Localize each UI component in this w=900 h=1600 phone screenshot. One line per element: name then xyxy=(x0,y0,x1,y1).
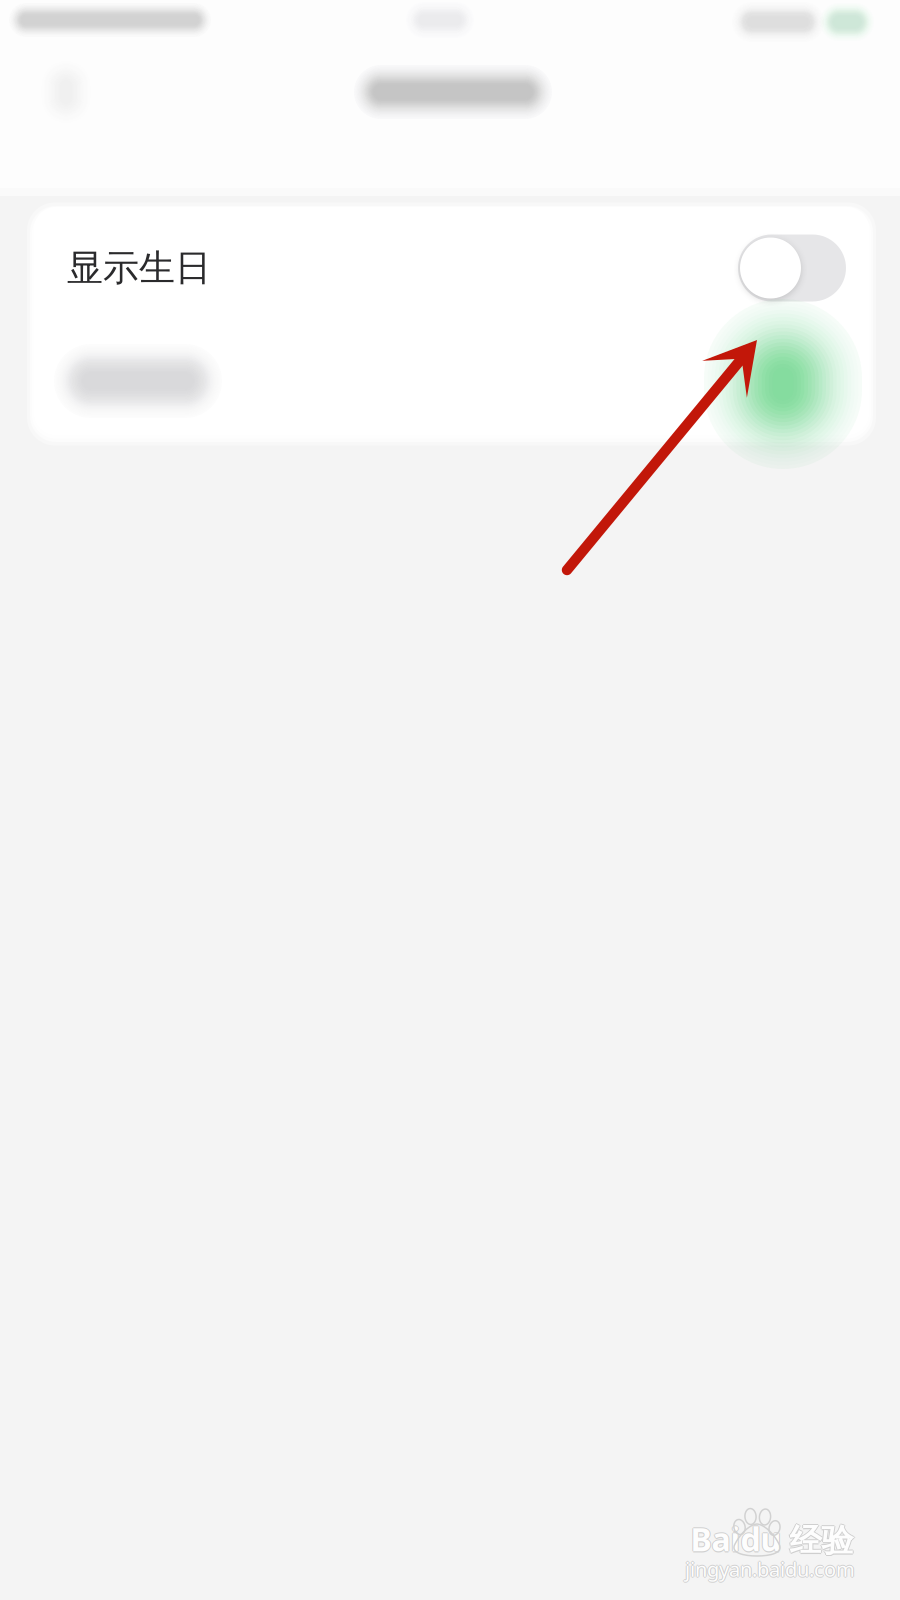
staticText: jingyan.baidu.com xyxy=(685,1557,855,1583)
staticText: jingyan.baidu.com xyxy=(685,1555,855,1581)
staticText: Baidu 经验 xyxy=(692,1518,855,1560)
staticText: Baidu 经验 xyxy=(690,1518,853,1560)
staticText: jingyan.baidu.com xyxy=(685,1556,855,1582)
button[interactable]: 显示生日 xyxy=(34,213,869,323)
staticText: jingyan.baidu.com xyxy=(684,1556,854,1582)
staticText: Baidu 经验 xyxy=(690,1517,853,1559)
staticText: jingyan.baidu.com xyxy=(686,1556,856,1582)
staticText: Baidu 经验 xyxy=(689,1518,852,1560)
staticText: Baidu 经验 xyxy=(690,1519,853,1561)
button[interactable]: Back xyxy=(23,46,109,138)
staticText: 显示生日 xyxy=(67,246,211,290)
